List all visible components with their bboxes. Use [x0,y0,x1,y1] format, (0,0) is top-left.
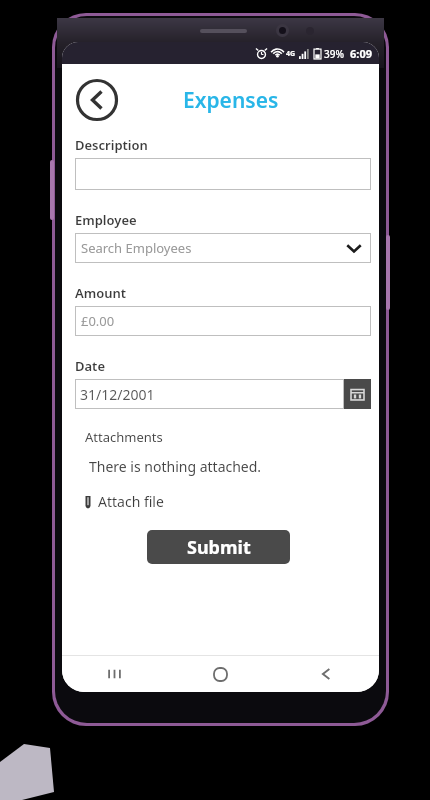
staticText: Employee [75,211,137,229]
button[interactable]: Recents [62,656,167,692]
staticText: Attach file [98,492,164,511]
button[interactable]: Pick date [344,379,371,409]
button[interactable]: Home [167,656,273,692]
button[interactable]: Back [273,656,379,692]
staticText: Submit [187,535,251,560]
staticText: Date [75,357,106,375]
button[interactable] [75,158,371,190]
staticText: 39% [324,47,344,61]
staticText: Attachments [85,428,163,446]
staticText: 31/12/2001 [80,385,155,404]
staticText: There is nothing attached. [89,457,262,476]
staticText: 6:09 [350,46,372,61]
button[interactable]: Submit [147,530,290,564]
button[interactable]: Attach file [83,492,164,511]
button[interactable]: 31/12/2001 [75,379,344,409]
button[interactable]: Back [75,78,119,122]
button[interactable]: £0.00 [75,306,371,336]
staticText: £0.00 [81,312,115,330]
staticText: 4G [286,49,296,59]
staticText: Search Employees [81,239,192,257]
staticText: Amount [75,284,127,302]
button[interactable]: Search Employees [75,233,371,263]
staticText: Expenses [183,86,279,115]
staticText: Description [75,136,148,154]
